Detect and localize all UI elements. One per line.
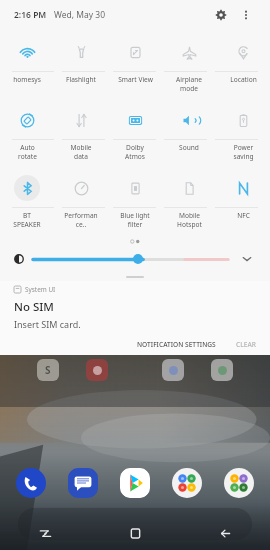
button[interactable]: Power saving bbox=[216, 100, 270, 139]
staticText: Mobile Hotspot bbox=[177, 211, 202, 229]
staticText: Performan ce.. bbox=[64, 211, 98, 229]
staticText: Flashlight bbox=[66, 75, 96, 84]
staticText: NOTIFICATION SETTINGS bbox=[137, 340, 216, 349]
staticText: S bbox=[45, 363, 51, 377]
button[interactable]: Mobile Hotspot bbox=[162, 168, 216, 207]
button[interactable]: Settings bbox=[210, 4, 232, 26]
button[interactable]: Recents bbox=[0, 516, 90, 550]
button[interactable]: Google folder bbox=[170, 466, 204, 500]
button[interactable]: App bbox=[211, 359, 233, 381]
staticText: Dolby Atmos bbox=[125, 143, 145, 161]
button[interactable]: Home bbox=[90, 516, 180, 550]
staticText: NFC bbox=[237, 211, 250, 220]
button[interactable]: Auto rotate bbox=[0, 100, 54, 139]
button[interactable]: BT SPEAKER bbox=[0, 168, 54, 207]
staticText: Location bbox=[230, 75, 257, 84]
button[interactable]: homesys bbox=[0, 32, 54, 71]
button[interactable]: Blue light filter bbox=[108, 168, 162, 207]
button[interactable]: Airplane mode bbox=[162, 32, 216, 71]
button[interactable] bbox=[33, 252, 228, 266]
button[interactable]: Performan ce.. bbox=[54, 168, 108, 207]
button[interactable]: Messages bbox=[66, 466, 100, 500]
button[interactable]: Play Store bbox=[118, 466, 152, 500]
staticText: Blue light filter bbox=[120, 211, 150, 229]
staticText: Sound bbox=[179, 143, 199, 152]
button[interactable] bbox=[18, 508, 252, 540]
button[interactable]: Expand brightness bbox=[238, 250, 256, 268]
button[interactable]: Back bbox=[180, 516, 270, 550]
button[interactable]: App bbox=[86, 359, 108, 381]
staticText: System UI bbox=[25, 285, 56, 294]
button[interactable]: Dolby Atmos bbox=[108, 100, 162, 139]
button[interactable]: NOTIFICATION SETTINGS bbox=[133, 337, 220, 352]
staticText: Airplane mode bbox=[176, 75, 202, 93]
staticText: Auto rotate bbox=[18, 143, 37, 161]
button[interactable]: App bbox=[162, 359, 184, 381]
button[interactable]: App bbox=[37, 359, 59, 381]
staticText: CLEAR bbox=[236, 340, 256, 349]
staticText: No SIM bbox=[14, 299, 54, 315]
button[interactable]: More options bbox=[236, 5, 256, 25]
staticText: BT SPEAKER bbox=[13, 211, 41, 229]
staticText: 2:16 PM bbox=[14, 9, 47, 21]
staticText: Smart View bbox=[118, 75, 153, 84]
button[interactable]: Mobile data bbox=[54, 100, 108, 139]
button[interactable]: CLEAR bbox=[232, 337, 260, 352]
button[interactable]: Apps folder bbox=[222, 466, 256, 500]
button[interactable]: Smart View bbox=[108, 32, 162, 71]
button[interactable]: Location bbox=[216, 32, 270, 71]
button[interactable]: Phone bbox=[14, 466, 48, 500]
button[interactable]: Flashlight bbox=[54, 32, 108, 71]
staticText: Insert SIM card. bbox=[14, 318, 81, 330]
staticText: Mobile data bbox=[70, 143, 92, 161]
staticText: Power saving bbox=[233, 143, 254, 161]
staticText: Wed, May 30 bbox=[54, 9, 105, 21]
button[interactable]: NFC bbox=[216, 168, 270, 207]
button[interactable]: Sound bbox=[162, 100, 216, 139]
staticText: homesys bbox=[13, 75, 41, 84]
